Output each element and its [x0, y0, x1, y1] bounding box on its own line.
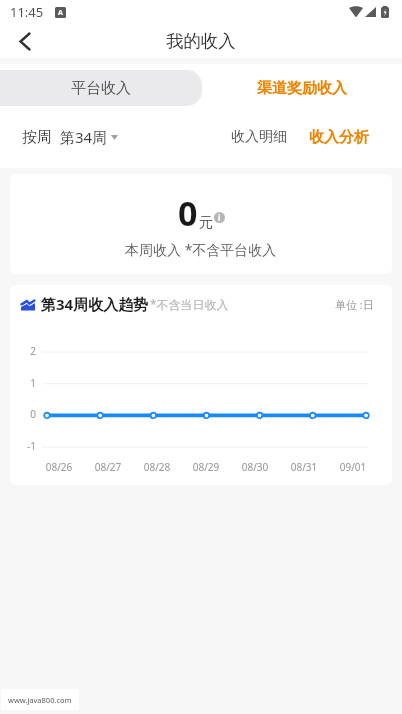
staticText: 08/29	[186, 460, 226, 474]
staticText: 08/31	[284, 460, 324, 474]
staticText: www.java800.com	[8, 695, 72, 705]
staticText: 08/28	[137, 460, 177, 474]
button[interactable]: 收入分析	[305, 120, 373, 155]
button[interactable]: Back	[7, 24, 43, 58]
button[interactable]: 渠道奖励收入	[202, 70, 402, 106]
staticText: 平台收入	[71, 79, 131, 98]
staticText: 2	[18, 344, 36, 358]
staticText: 08/30	[235, 460, 275, 474]
staticText: 08/26	[39, 460, 79, 474]
staticText: 收入明细	[231, 128, 287, 146]
staticText: 08/27	[88, 460, 128, 474]
staticText: 渠道奖励收入	[257, 79, 347, 98]
staticText: 元	[199, 214, 213, 232]
staticText: 单位 :日	[335, 297, 374, 312]
button[interactable]: 平台收入	[0, 70, 202, 106]
button[interactable]: 收入明细	[227, 120, 291, 154]
staticText: 0	[178, 190, 198, 236]
staticText: 1	[18, 376, 36, 390]
staticText: *不含当日收入	[150, 296, 229, 312]
button[interactable]: 按周	[22, 127, 118, 147]
staticText: 收入分析	[309, 128, 369, 147]
staticText: -1	[18, 439, 36, 453]
staticText: 第34周收入趋势	[41, 294, 149, 314]
staticText: i	[218, 212, 221, 223]
staticText: 第34周	[60, 127, 108, 147]
staticText: 按周	[22, 128, 52, 147]
staticText: A	[58, 8, 63, 18]
staticText: 0	[18, 407, 36, 421]
staticText: 本周收入 *不含平台收入	[125, 240, 277, 259]
staticText: 11:45	[10, 3, 44, 21]
staticText: 我的收入	[166, 30, 236, 52]
staticText: 09/01	[333, 460, 373, 474]
